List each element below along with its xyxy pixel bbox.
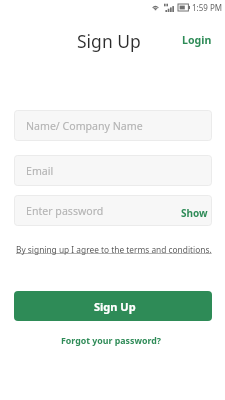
other: Mobile signal xyxy=(164,3,174,12)
staticText: Show xyxy=(181,206,208,220)
staticText: Name/ Company Name xyxy=(26,119,143,133)
button[interactable]: Show xyxy=(176,202,212,224)
other: Wi-Fi xyxy=(152,3,159,11)
button[interactable]: Forgot your password? xyxy=(58,332,164,350)
button[interactable]: Enter password xyxy=(14,195,212,226)
button[interactable]: Login xyxy=(179,30,215,50)
staticText: Enter password xyxy=(26,204,104,218)
staticText: 1:59 PM xyxy=(192,2,223,13)
staticText: By signing up I agree to the terms and c… xyxy=(16,244,212,255)
staticText: Login xyxy=(182,33,212,47)
staticText: Forgot your password? xyxy=(61,335,161,347)
button[interactable]: Email xyxy=(14,155,212,186)
button[interactable]: By signing up I agree to the terms and c… xyxy=(15,243,213,256)
other: Battery xyxy=(178,4,190,11)
button[interactable]: Name/ Company Name xyxy=(14,110,212,141)
staticText: Email xyxy=(26,164,54,178)
staticText: Sign Up xyxy=(94,299,136,314)
button[interactable]: Sign Up xyxy=(14,291,212,321)
staticText: Sign Up xyxy=(77,29,141,53)
